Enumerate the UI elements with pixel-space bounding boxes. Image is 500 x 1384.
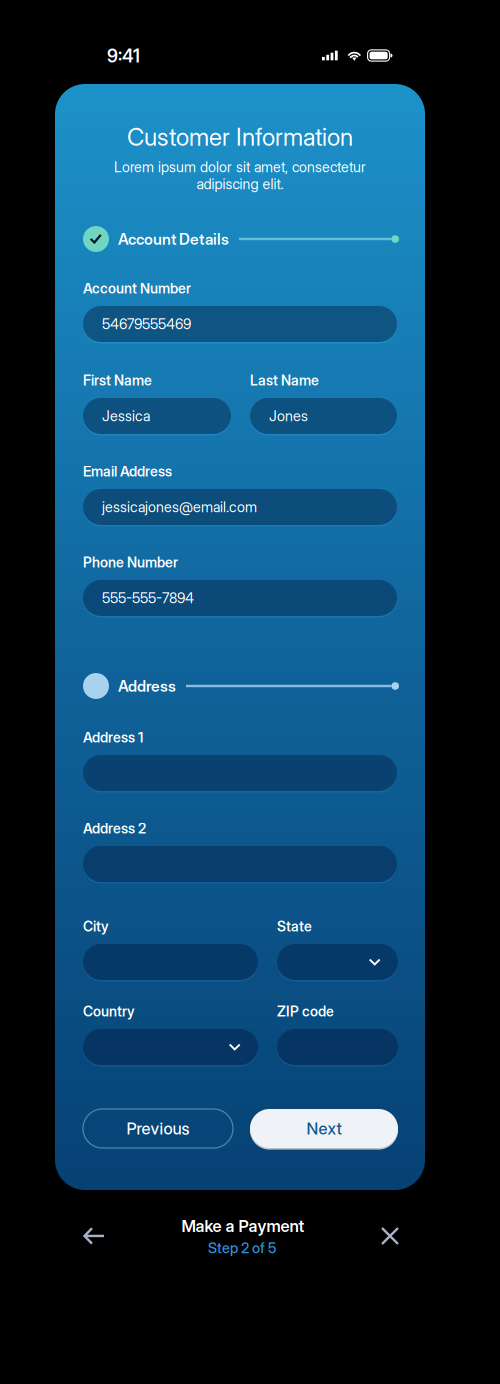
staticText: Last Name (250, 372, 319, 389)
staticText: jessicajones@email.com (102, 498, 257, 516)
staticText: Phone Number (83, 554, 178, 571)
button[interactable]: Jessica (83, 398, 231, 434)
staticText: Account Details (118, 230, 229, 248)
button[interactable]: Next (250, 1109, 398, 1148)
staticText: ZIP code (277, 1003, 334, 1020)
staticText: State (277, 918, 312, 935)
button[interactable] (83, 944, 258, 980)
staticText: Previous (126, 1119, 189, 1138)
staticText: Country (83, 1003, 135, 1020)
staticText: Jessica (102, 407, 150, 425)
staticText: Address 1 (83, 729, 143, 746)
button[interactable]: jessicajones@email.com (83, 489, 397, 525)
staticText: Customer Information (127, 122, 353, 151)
staticText: Account Number (83, 280, 191, 297)
staticText: First Name (83, 372, 152, 389)
staticText: Address 2 (83, 820, 146, 837)
button[interactable] (277, 1029, 398, 1065)
staticText: Email Address (83, 463, 172, 480)
staticText: Address (118, 677, 176, 695)
staticText: City (83, 918, 109, 935)
staticText: Next (306, 1119, 341, 1138)
button[interactable]: 54679555469 (83, 306, 397, 342)
staticText: Jones (269, 407, 308, 425)
button[interactable] (83, 846, 397, 882)
button[interactable]: Close (364, 1214, 416, 1258)
button[interactable]: Jones (250, 398, 397, 434)
staticText: adipiscing elit. (196, 175, 283, 193)
staticText: Lorem ipsum dolor sit amet, consectetur (114, 158, 366, 176)
button[interactable]: Previous (83, 1109, 233, 1148)
staticText: 555-555-7894 (102, 589, 194, 607)
button[interactable]: 555-555-7894 (83, 580, 397, 616)
button[interactable] (83, 755, 397, 791)
staticText: Step 2 of 5 (208, 1239, 276, 1257)
staticText: Make a Payment (181, 1216, 304, 1236)
button[interactable]: Back (68, 1214, 120, 1258)
staticText: 9:41 (107, 45, 140, 67)
button[interactable] (277, 944, 398, 980)
button[interactable] (83, 1029, 258, 1065)
staticText: 54679555469 (102, 315, 191, 333)
